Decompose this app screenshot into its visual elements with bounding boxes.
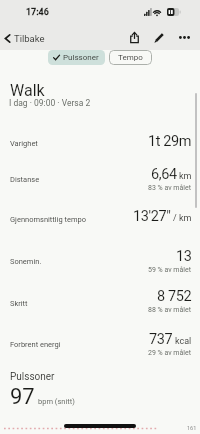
button[interactable]: Rediger: [149, 32, 169, 44]
button[interactable]: Flere valg: [174, 32, 195, 43]
staticText: / km: [173, 213, 192, 224]
staticText: 29 % av målet: [148, 349, 192, 357]
button[interactable]: Gjennomsnittlig tempo: [0, 205, 200, 237]
staticText: Tilbake: [14, 33, 45, 44]
staticText: bpm (snitt): [38, 397, 75, 406]
staticText: 737: [149, 331, 173, 348]
button[interactable]: Sonemin.: [0, 245, 200, 277]
staticText: 83 % av målet: [148, 184, 192, 192]
staticText: 13: [176, 248, 192, 265]
staticText: Varighet: [10, 139, 38, 148]
button[interactable]: Distanse: [0, 163, 200, 195]
button[interactable]: Forbrent energi: [0, 328, 200, 360]
staticText: 59 % av målet: [148, 266, 192, 274]
button[interactable]: Tempo: [109, 50, 152, 65]
button[interactable]: Varighet: [0, 130, 200, 162]
staticText: 13'27": [133, 208, 171, 225]
staticText: 161: [187, 425, 197, 431]
staticText: kcal: [175, 336, 192, 347]
button[interactable]: Del: [125, 31, 144, 44]
button[interactable]: Skritt: [0, 285, 200, 317]
staticText: Sonemin.: [10, 257, 42, 266]
staticText: Skritt: [10, 299, 28, 308]
staticText: 6,64: [151, 166, 177, 183]
button[interactable]: Tilbake: [0, 31, 51, 46]
staticText: I dag · 09:00 · Versa 2: [9, 98, 91, 108]
staticText: Pulssoner: [63, 53, 99, 62]
staticText: 97: [10, 384, 35, 410]
staticText: Forbrent energi: [10, 340, 61, 349]
button[interactable]: Pulssoner: [48, 50, 105, 65]
staticText: km: [179, 171, 192, 182]
staticText: Pulssoner: [10, 371, 55, 383]
staticText: Tempo: [118, 53, 143, 62]
staticText: 8 752: [157, 288, 192, 305]
staticText: Distanse: [10, 175, 40, 184]
staticText: Walk: [10, 81, 45, 100]
staticText: 88 % av målet: [148, 306, 192, 314]
staticText: 1t 29m: [148, 133, 192, 150]
staticText: 17:46: [26, 7, 49, 18]
staticText: Gjennomsnittlig tempo: [10, 215, 86, 224]
